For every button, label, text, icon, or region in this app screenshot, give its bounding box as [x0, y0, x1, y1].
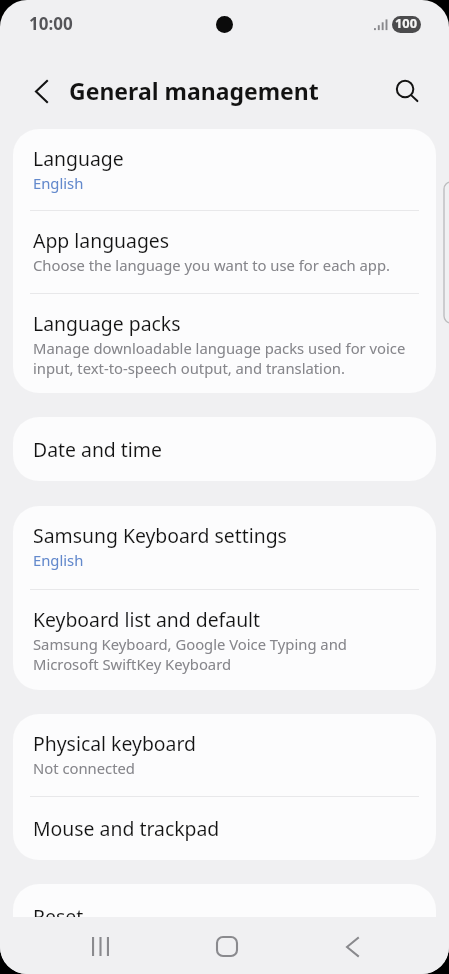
button[interactable]: Samsung Keyboard settings — [13, 506, 436, 589]
staticText: App languages — [33, 227, 170, 253]
staticText: General management — [69, 75, 319, 106]
button[interactable]: App languages — [13, 211, 436, 293]
button[interactable]: Keyboard list and default — [13, 590, 436, 690]
staticText: Language packs — [33, 310, 181, 336]
staticText: Not connected — [33, 758, 135, 778]
staticText: 100 — [395, 16, 417, 31]
staticText: Samsung Keyboard settings — [33, 522, 287, 548]
button[interactable]: Search — [385, 69, 429, 113]
staticText: English — [33, 173, 84, 193]
button[interactable]: Back — [331, 925, 374, 968]
button[interactable]: Physical keyboard — [13, 714, 436, 796]
staticText: 10:00 — [29, 12, 73, 35]
button[interactable]: Language — [13, 129, 436, 210]
button[interactable]: Mouse and trackpad — [13, 797, 436, 860]
staticText: Language — [33, 145, 124, 171]
staticText: Manage downloadable language packs used … — [33, 338, 416, 378]
staticText: English — [33, 550, 84, 570]
button[interactable]: Recent apps — [79, 925, 122, 968]
button[interactable]: Reset — [13, 884, 436, 948]
staticText: Keyboard list and default — [33, 606, 261, 632]
staticText: Date and time — [33, 436, 162, 462]
staticText: Reset — [33, 903, 84, 929]
button[interactable]: Language packs — [13, 294, 436, 393]
staticText: Mouse and trackpad — [33, 815, 220, 841]
button[interactable]: Date and time — [13, 417, 436, 481]
button[interactable]: Back — [19, 69, 63, 113]
staticText: Samsung Keyboard, Google Voice Typing an… — [33, 634, 416, 674]
staticText: Physical keyboard — [33, 730, 196, 756]
button[interactable]: Home — [205, 925, 248, 968]
staticText: Choose the language you want to use for … — [33, 255, 390, 275]
